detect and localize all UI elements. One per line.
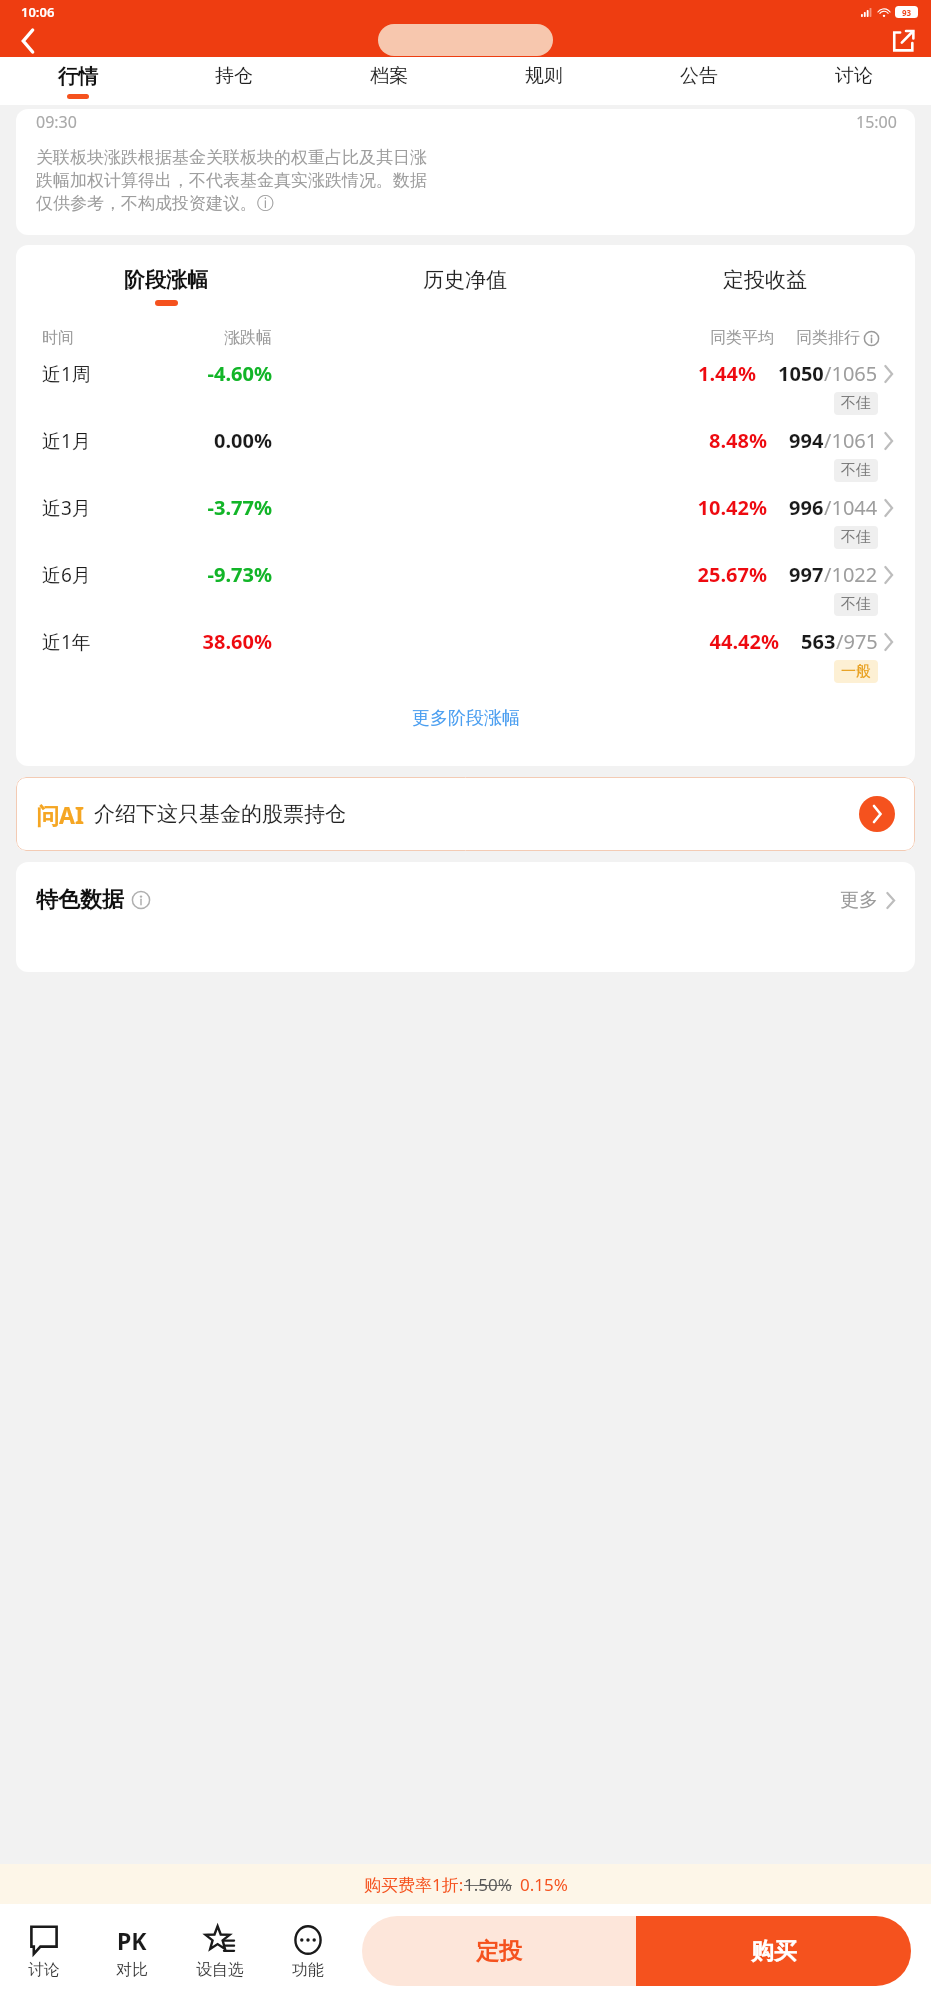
staticText: 讨论 <box>835 64 873 88</box>
staticText: 近1周 <box>42 361 152 387</box>
staticText: 0.00% <box>152 427 272 454</box>
staticText: 563 <box>801 628 836 655</box>
staticText: 涨跌幅 <box>152 328 272 348</box>
staticText: 93 <box>902 7 912 18</box>
staticText: 关联板块涨跌根据基金关联板块的权重占比及其日涨 跌幅加权计算得出，不代表基金真实… <box>36 147 427 214</box>
staticText: 不佳 <box>841 528 871 547</box>
button[interactable]: 定投收益 <box>615 267 915 306</box>
button[interactable]: 规则 <box>466 57 621 105</box>
staticText: 0.15% <box>520 1873 568 1896</box>
button[interactable]: 历史净值 <box>315 267 615 306</box>
staticText: 设自选 <box>196 1960 244 1980</box>
button[interactable]: 讨论 <box>0 1904 88 1998</box>
staticText: 历史净值 <box>423 267 507 293</box>
staticText: 定投 <box>476 1937 522 1966</box>
staticText: 994 <box>789 427 824 454</box>
button[interactable]: 近6月 <box>16 549 915 616</box>
staticText: /975 <box>836 628 878 655</box>
button[interactable]: Share <box>875 24 931 57</box>
staticText: 15:00 <box>856 111 897 133</box>
staticText: 问AI <box>36 799 84 830</box>
button[interactable]: 购买 <box>636 1916 911 1986</box>
staticText: 996 <box>789 494 824 521</box>
staticText: 更多 <box>840 888 878 912</box>
staticText: 1050 <box>778 360 824 387</box>
staticText: 档案 <box>370 64 408 88</box>
staticText: 10.42% <box>272 494 767 521</box>
button[interactable]: 阶段涨幅 <box>16 267 315 306</box>
staticText: 近1年 <box>42 629 152 655</box>
staticText: /1065 <box>824 360 878 387</box>
staticText: 介绍下这只基金的股票持仓 <box>94 801 346 827</box>
staticText: -9.73% <box>152 561 272 588</box>
staticText: 阶段涨幅 <box>124 267 208 293</box>
staticText: 997 <box>789 561 824 588</box>
staticText: 8.48% <box>272 427 767 454</box>
staticText: 功能 <box>292 1960 324 1980</box>
button[interactable]: 功能 <box>264 1904 352 1998</box>
staticText: 1.50% <box>464 1873 512 1896</box>
button[interactable]: 更多阶段涨幅 <box>16 707 915 730</box>
button[interactable]: 持仓 <box>156 57 311 105</box>
staticText: /1044 <box>824 494 878 521</box>
button[interactable]: 定投 <box>362 1916 636 1986</box>
staticText: /1022 <box>824 561 878 588</box>
staticText: 规则 <box>525 64 563 88</box>
staticText: 定投收益 <box>723 267 807 293</box>
staticText: 行情 <box>58 64 98 89</box>
staticText: 购买 <box>751 1937 797 1966</box>
staticText: 时间 <box>42 328 152 348</box>
button[interactable]: PK <box>88 1904 176 1998</box>
staticText: -4.60% <box>152 360 272 387</box>
button[interactable]: 更多 <box>840 888 895 912</box>
button[interactable]: 设自选 <box>176 1904 264 1998</box>
staticText: 同类排行 <box>796 328 860 348</box>
button[interactable]: 近1周 <box>16 348 915 415</box>
staticText: 公告 <box>680 64 718 88</box>
staticText: 44.42% <box>272 628 779 655</box>
staticText: 持仓 <box>215 64 253 88</box>
button[interactable]: 讨论 <box>776 57 931 105</box>
staticText: 不佳 <box>841 461 871 480</box>
button[interactable]: 档案 <box>311 57 466 105</box>
staticText: 同类平均 <box>272 328 774 348</box>
staticText: -3.77% <box>152 494 272 521</box>
staticText: 不佳 <box>841 394 871 413</box>
staticText: 对比 <box>116 1960 148 1980</box>
staticText: 09:30 <box>36 111 77 133</box>
button[interactable]: 近3月 <box>16 482 915 549</box>
staticText: 10:06 <box>21 3 55 21</box>
staticText: 更多阶段涨幅 <box>412 707 520 730</box>
staticText: 讨论 <box>28 1960 60 1980</box>
staticText: 购买费率1折: <box>364 1873 464 1896</box>
button[interactable]: 行情 <box>0 57 156 105</box>
button[interactable]: Back <box>0 24 56 57</box>
staticText: 近3月 <box>42 495 152 521</box>
staticText: 不佳 <box>841 595 871 614</box>
button[interactable]: 近1月 <box>16 415 915 482</box>
staticText: 近1月 <box>42 428 152 454</box>
button[interactable]: 公告 <box>621 57 776 105</box>
staticText: 特色数据 <box>36 886 124 914</box>
staticText: 一般 <box>841 662 871 681</box>
button[interactable]: 问AI <box>16 777 915 851</box>
staticText: 25.67% <box>272 561 767 588</box>
button[interactable]: 近1年 <box>16 616 915 683</box>
staticText: 1.44% <box>272 360 756 387</box>
staticText: 38.60% <box>152 628 272 655</box>
staticText: 近6月 <box>42 562 152 588</box>
staticText: /1061 <box>824 427 878 454</box>
staticText: PK <box>117 1925 147 1956</box>
